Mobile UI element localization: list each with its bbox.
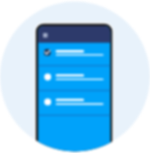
button[interactable]: Mobile checklist app illustration: [0, 0, 150, 153]
